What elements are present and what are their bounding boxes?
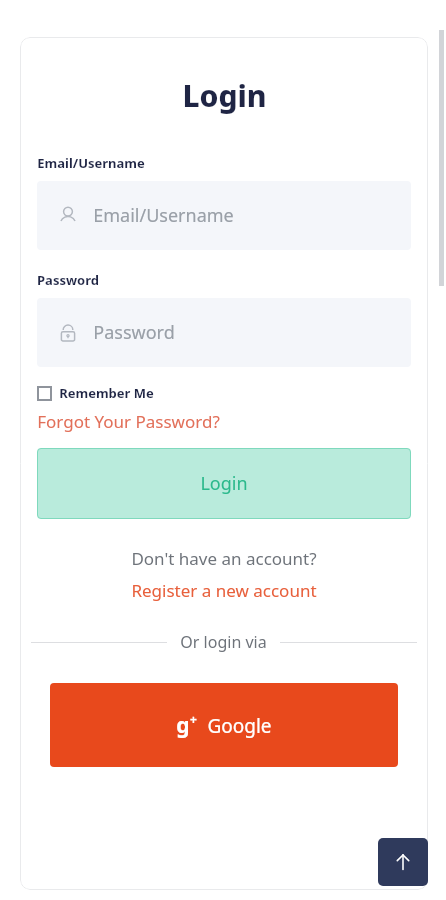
button[interactable]: Password [37,298,411,367]
staticText: g [176,711,190,740]
staticText: Google [207,713,272,739]
button[interactable]: g [50,683,398,767]
staticText: Register a new account [131,579,317,602]
staticText: Password [37,271,99,289]
button[interactable]: Register a new account [131,579,317,602]
staticText: Don't have an account? [131,547,317,570]
staticText: Or login via [180,631,267,653]
staticText: + [190,711,197,727]
button[interactable]: Email/Username [37,181,411,250]
staticText: Email/Username [93,203,234,228]
staticText: Email/Username [37,154,145,172]
staticText: Remember Me [59,384,154,402]
button[interactable]: Forgot Your Password? [37,410,220,433]
button[interactable]: Scroll to top [378,838,428,886]
staticText: Password [93,320,175,345]
button[interactable]: Remember Me [37,384,154,402]
staticText: Login [182,75,267,116]
staticText: Login [200,471,248,496]
button[interactable]: Login [37,448,411,519]
staticText: Forgot Your Password? [37,410,220,433]
